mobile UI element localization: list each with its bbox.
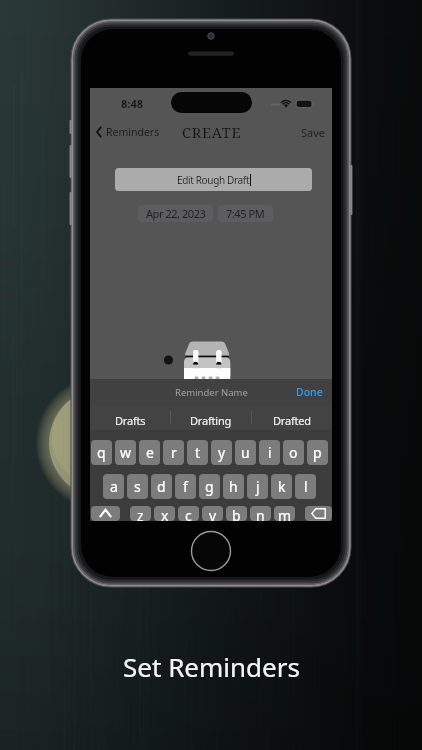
staticText: x xyxy=(161,506,169,521)
button[interactable]: z xyxy=(130,506,151,521)
staticText: l xyxy=(304,477,308,496)
button[interactable]: p xyxy=(307,440,328,465)
button[interactable]: y xyxy=(211,440,232,465)
button[interactable]: o xyxy=(283,440,304,465)
button[interactable]: s xyxy=(127,474,148,499)
staticText: Drafting xyxy=(190,413,232,428)
button[interactable]: c xyxy=(178,506,199,521)
button[interactable]: Drafts xyxy=(90,405,170,430)
staticText: Edit Rough Draft xyxy=(177,173,250,187)
staticText: Set Reminders xyxy=(123,649,300,684)
staticText: k xyxy=(278,477,286,496)
staticText: e xyxy=(146,443,154,462)
staticText: Apr 22, 2023 xyxy=(146,206,206,221)
button[interactable]: j xyxy=(247,474,268,499)
staticText: a xyxy=(110,477,118,496)
staticText: 7:45 PM xyxy=(226,206,265,221)
button[interactable]: Drafting xyxy=(170,405,251,430)
button[interactable]: Reminders xyxy=(93,122,166,142)
button[interactable]: b xyxy=(226,506,247,521)
button[interactable]: 7:45 PM xyxy=(218,205,273,222)
staticText: CREATE xyxy=(182,122,242,142)
button[interactable]: x xyxy=(154,506,175,521)
button[interactable]: Shift xyxy=(91,506,120,521)
staticText: y xyxy=(218,443,226,462)
button[interactable]: h xyxy=(223,474,244,499)
button[interactable]: Save xyxy=(294,122,333,143)
staticText: h xyxy=(229,477,238,496)
staticText: n xyxy=(256,506,265,521)
button[interactable]: w xyxy=(115,440,136,465)
staticText: i xyxy=(268,443,272,462)
staticText: u xyxy=(241,443,250,462)
button[interactable]: f xyxy=(175,474,196,499)
staticText: Done xyxy=(296,385,323,399)
staticText: b xyxy=(232,506,241,521)
staticText: v xyxy=(209,506,217,521)
staticText: p xyxy=(313,443,322,462)
button[interactable]: v xyxy=(202,506,223,521)
button[interactable]: k xyxy=(271,474,292,499)
staticText: f xyxy=(183,477,188,496)
button[interactable]: m xyxy=(274,506,295,521)
staticText: j xyxy=(256,477,260,496)
staticText: c xyxy=(185,506,192,521)
button[interactable]: a xyxy=(103,474,124,499)
button[interactable]: Apr 22, 2023 xyxy=(138,205,213,222)
button[interactable]: d xyxy=(151,474,172,499)
button[interactable]: Drafted xyxy=(251,405,332,430)
staticText: w xyxy=(120,443,132,462)
button[interactable]: n xyxy=(250,506,271,521)
button[interactable]: u xyxy=(235,440,256,465)
staticText: r xyxy=(171,443,177,462)
button[interactable]: i xyxy=(259,440,280,465)
staticText: Drafts xyxy=(115,413,146,428)
button[interactable]: Backspace xyxy=(305,506,332,521)
button[interactable]: t xyxy=(187,440,208,465)
staticText: g xyxy=(205,477,214,496)
button[interactable]: Done xyxy=(288,382,332,402)
staticText: q xyxy=(97,443,106,462)
button[interactable]: e xyxy=(139,440,160,465)
staticText: o xyxy=(289,443,298,462)
staticText: d xyxy=(157,477,166,496)
button[interactable]: Edit Rough Draft xyxy=(115,168,312,191)
button[interactable]: r xyxy=(163,440,184,465)
staticText: Save xyxy=(301,125,326,140)
staticText: 8:48 xyxy=(121,96,143,111)
button[interactable]: l xyxy=(295,474,316,499)
staticText: Reminder Name xyxy=(175,386,248,399)
staticText: z xyxy=(137,506,144,521)
staticText: Drafted xyxy=(273,413,311,428)
staticText: s xyxy=(134,477,141,496)
button[interactable]: q xyxy=(91,440,112,465)
staticText: t xyxy=(195,443,201,462)
button[interactable]: g xyxy=(199,474,220,499)
staticText: m xyxy=(278,506,292,521)
staticText: Reminders xyxy=(106,125,160,139)
